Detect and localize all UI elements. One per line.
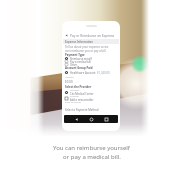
staticText: Date of Service — [65, 101, 82, 104]
staticText: Healthcare Account — [70, 71, 96, 75]
button[interactable]: Provider — [65, 95, 117, 101]
button[interactable]: Select a Payment Method — [65, 108, 117, 112]
button[interactable]: Provider — [65, 89, 117, 95]
button[interactable]: Back — [73, 116, 79, 122]
button[interactable]: Healthcare Account — [65, 70, 117, 75]
staticText: $0.00 — [65, 80, 73, 84]
staticText: Select the Provider — [65, 85, 92, 89]
staticText: Payment Type — [65, 53, 85, 57]
staticText: Select a Payment Method — [65, 108, 99, 112]
staticText: Account Group Paid — [65, 66, 93, 70]
button[interactable]: Reimburse myself — [65, 57, 117, 60]
button[interactable]: Home — [88, 116, 94, 122]
staticText: or pay a medical bill. — [63, 153, 121, 161]
button[interactable]: Back — [62, 32, 120, 39]
button[interactable]: Other — [65, 63, 117, 66]
staticText: Pay or Reimburse an Expense — [70, 34, 115, 38]
staticText: Add a new provider — [70, 98, 94, 101]
other: Back — [65, 34, 68, 37]
staticText: $1,240.00 — [97, 71, 110, 75]
staticText: Reimburse myself — [70, 57, 92, 60]
staticText: Other — [70, 63, 78, 66]
button[interactable]: Pay a medical bill — [65, 60, 117, 63]
button[interactable]: Expense Information — [63, 39, 119, 44]
staticText: Pay a medical bill — [70, 60, 91, 63]
staticText: You can reimburse yourself — [53, 144, 130, 152]
staticText: Tell us about your expense so we — [65, 45, 109, 49]
staticText: City Medical Center — [70, 92, 94, 95]
staticText: Expense Information — [65, 40, 94, 44]
button[interactable]: Recents — [103, 116, 109, 122]
staticText: Amount — [65, 76, 74, 79]
staticText: Provider — [70, 95, 80, 98]
staticText: can reimburse you or pay a bill. — [65, 49, 107, 53]
staticText: Provider — [70, 89, 80, 92]
